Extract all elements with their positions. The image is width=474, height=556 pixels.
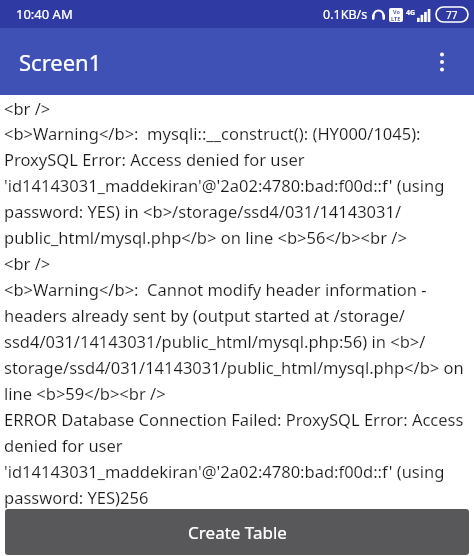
staticText: 77 bbox=[446, 8, 458, 22]
button[interactable]: More options bbox=[422, 42, 462, 82]
staticText: Create Table bbox=[188, 521, 287, 544]
staticText: 0.1KB/s bbox=[323, 6, 368, 23]
staticText: Screen1 bbox=[19, 47, 102, 77]
staticText: 10:40 AM bbox=[16, 5, 73, 23]
staticText: 4G bbox=[406, 8, 416, 18]
staticText: Vo bbox=[393, 8, 400, 15]
button[interactable]: Create Table bbox=[5, 509, 469, 555]
staticText: LTE bbox=[391, 15, 401, 22]
staticText: <br /> <b>Warning</b>: mysqli::__constru… bbox=[4, 97, 470, 509]
